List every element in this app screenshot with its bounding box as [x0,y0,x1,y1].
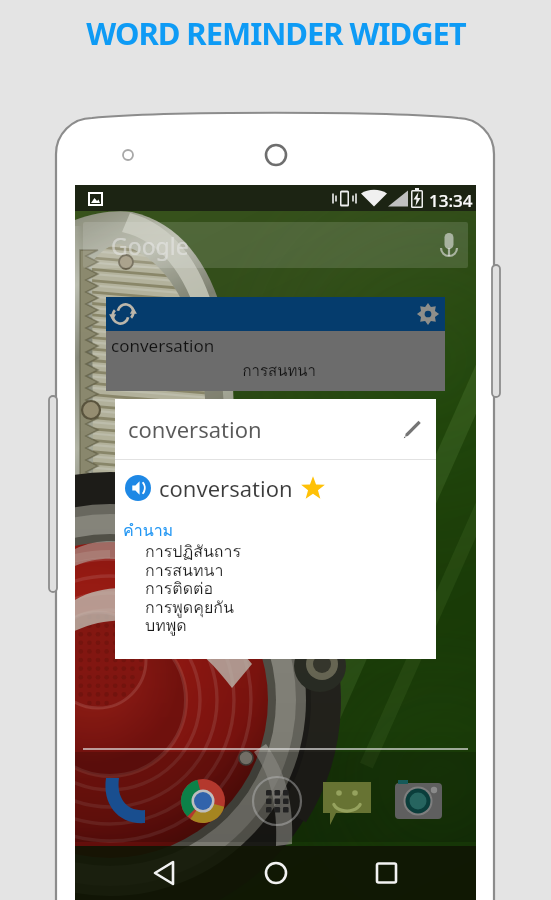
staticText: conversation [159,473,293,503]
staticText: 13:34 [429,189,473,212]
staticText: WORD REMINDER WIDGET [86,12,466,54]
staticText: การสนทนา [145,558,224,583]
staticText: คำนาม [123,518,174,543]
staticText: conversation [128,414,262,444]
staticText: conversation [111,334,215,357]
button[interactable]: Edit [388,405,436,453]
staticText: บทพูด [145,613,187,638]
staticText: การปฏิสันถาร [145,539,242,564]
staticText: Google [111,230,189,261]
button[interactable]: Google [83,222,468,268]
button[interactable]: conversation [106,331,445,391]
staticText: การพูดคุยกัน [145,595,234,620]
button[interactable]: Settings [411,297,445,331]
button[interactable]: conversation [115,460,436,515]
staticText: การติดต่อ [145,576,214,601]
staticText: การสนทนา [106,359,316,383]
button[interactable]: Refresh [106,297,140,331]
button[interactable]: conversation [115,399,436,459]
